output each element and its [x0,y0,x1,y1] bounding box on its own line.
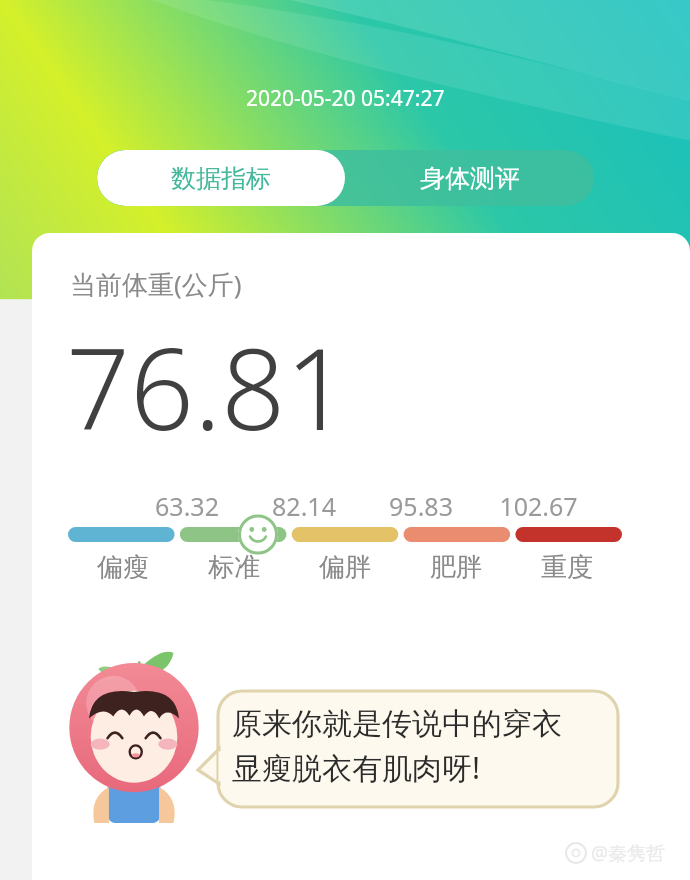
staticText: 63.32 [155,489,219,523]
staticText: 偏瘦 [97,551,149,584]
staticText: 肥胖 [430,551,482,584]
staticText: 偏胖 [319,551,371,584]
staticText: 身体测评 [420,163,520,194]
staticText: 2020-05-20 05:47:27 [246,84,445,113]
button[interactable]: 数据指标 [97,150,345,206]
staticText: 原来你就是传说中的穿衣 [232,705,562,743]
staticText: 重度 [541,551,593,584]
staticText: 76.81 [66,310,350,463]
staticText: 102.67 [499,489,578,523]
staticText: 82.14 [272,489,336,523]
staticText: 显瘦脱衣有肌肉呀! [232,747,481,788]
button[interactable]: 身体测评 [345,150,594,206]
staticText: @秦隽哲 [591,840,666,866]
staticText: 数据指标 [171,163,271,194]
staticText: 当前体重(公斤) [70,266,242,302]
staticText: 标准 [208,551,260,584]
staticText: 95.83 [389,489,453,523]
